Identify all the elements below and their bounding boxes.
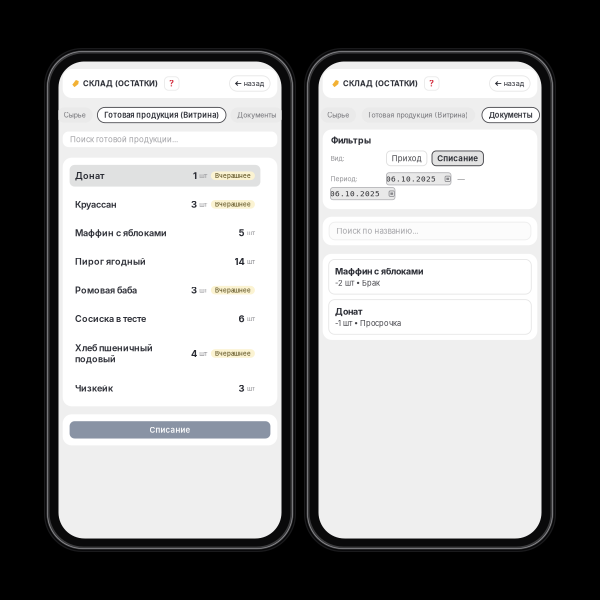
staticText: Чизкейк (75, 383, 113, 394)
staticText: Документы (237, 111, 276, 119)
staticText: Период: (330, 175, 357, 183)
staticText: шт (247, 257, 255, 266)
button[interactable]: Донат (70, 165, 260, 187)
staticText: Сырье (64, 111, 86, 119)
staticText: Фильтры (331, 135, 371, 145)
button[interactable]: Готовая продукция (Витрина) (97, 107, 226, 123)
button[interactable]: Справка (424, 77, 439, 90)
staticText: шт (247, 315, 255, 323)
staticText: Приход (392, 154, 422, 163)
staticText: 6 (238, 313, 244, 324)
staticText: шт (199, 286, 207, 294)
button[interactable]: Дата (330, 187, 395, 200)
button[interactable]: Поиск по названию... (329, 222, 531, 240)
staticText: Готовая продукция (Витрина) (368, 111, 468, 119)
button[interactable]: Хлеб пшеничный подовый (70, 336, 260, 370)
staticText: Маффин с яблоками (335, 266, 423, 277)
staticText: 14 (234, 256, 244, 267)
button[interactable]: Готовая продукция (Витрина) (362, 107, 475, 123)
staticText: Вид: (330, 154, 344, 162)
staticText: ? (429, 78, 434, 88)
staticText: 1 (193, 170, 197, 181)
staticText: шт (247, 384, 255, 392)
staticText: Сырье (327, 111, 349, 119)
staticText: шт (199, 200, 207, 208)
staticText: 3 (191, 199, 197, 210)
staticText: СКЛАД (ОСТАТКИ) (343, 79, 418, 88)
staticText: назад (244, 79, 265, 88)
staticText: 4 (191, 348, 197, 359)
staticText: Ромовая баба (75, 285, 137, 296)
button[interactable]: Сырье (320, 107, 356, 123)
staticText: Круассан (75, 199, 117, 210)
button[interactable]: Поиск готовой продукции... (63, 131, 277, 147)
staticText: 5 (238, 227, 244, 239)
button[interactable]: Ромовая баба (70, 279, 260, 301)
button[interactable]: Пирог ягодный (70, 251, 260, 272)
staticText: Сосиска в тесте (75, 313, 146, 324)
button[interactable]: Дата (386, 173, 451, 185)
button[interactable]: Документы (230, 107, 283, 123)
button[interactable]: Списание (432, 151, 483, 166)
staticText: Готовая продукция (Витрина) (104, 110, 219, 119)
staticText: назад (504, 79, 525, 88)
staticText: Документы (489, 110, 533, 119)
staticText: Вчерашнее (215, 350, 251, 357)
staticText: — (457, 174, 464, 183)
staticText: Поиск готовой продукции... (70, 134, 178, 144)
button[interactable]: назад (229, 76, 270, 91)
staticText: Хлеб пшеничный подовый (75, 342, 153, 364)
staticText: Вчерашнее (215, 172, 251, 179)
staticText: 06.10.2025 (386, 174, 436, 183)
staticText: -2 шт • Брак (335, 278, 380, 287)
button[interactable]: Донат (329, 300, 531, 334)
staticText: 3 (191, 284, 197, 296)
button[interactable]: Сырье (57, 107, 93, 123)
button[interactable]: Справка (164, 77, 179, 90)
staticText: шт (247, 229, 255, 237)
staticText: Списание (149, 425, 190, 435)
button[interactable]: Списание (70, 421, 270, 438)
staticText: СКЛАД (ОСТАТКИ) (83, 79, 158, 88)
button[interactable]: Сосиска в тесте (70, 308, 260, 330)
staticText: ? (169, 78, 174, 88)
button[interactable]: назад (489, 76, 530, 91)
button[interactable]: Чизкейк (70, 377, 260, 399)
staticText: Поиск по названию... (336, 226, 418, 236)
button[interactable]: Документы (482, 107, 539, 123)
staticText: Маффин с яблоками (75, 227, 167, 238)
staticText: Пирог ягодный (75, 256, 146, 267)
button[interactable]: Маффин с яблоками (329, 259, 531, 294)
staticText: Вчерашнее (215, 201, 251, 208)
staticText: Донат (335, 306, 362, 317)
button[interactable]: Приход (386, 151, 427, 166)
button[interactable]: Круассан (70, 193, 260, 215)
staticText: Вчерашнее (215, 286, 251, 294)
staticText: 06.10.2025 (330, 189, 380, 198)
staticText: Донат (75, 170, 104, 181)
staticText: шт (199, 349, 207, 358)
button[interactable]: Маффин с яблоками (70, 222, 260, 244)
staticText: -1 шт • Просрочка (335, 319, 401, 328)
staticText: шт (199, 172, 207, 180)
staticText: Списание (437, 153, 478, 163)
staticText: 3 (238, 383, 244, 394)
